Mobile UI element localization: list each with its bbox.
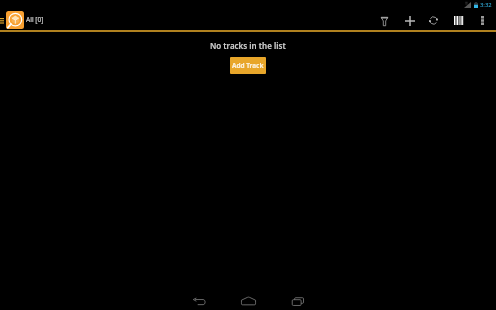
button[interactable]: Filter [372, 10, 397, 31]
staticText: No tracks in the list [210, 40, 286, 51]
staticText: All [0] [26, 15, 44, 24]
button[interactable]: Home [224, 292, 273, 310]
button[interactable]: Refresh [421, 10, 446, 31]
staticText: 3:32 [480, 1, 492, 9]
button[interactable]: Open navigation drawer [0, 9, 6, 30]
button[interactable]: Back [175, 292, 224, 310]
button[interactable]: Scan barcode [446, 10, 471, 31]
button[interactable]: App icon [6, 11, 24, 29]
button[interactable]: Recent apps [273, 292, 322, 310]
staticText: Add Track [232, 61, 264, 70]
button[interactable]: Add [397, 10, 422, 31]
button[interactable]: More options [470, 10, 495, 31]
button[interactable]: Add Track [230, 57, 266, 74]
